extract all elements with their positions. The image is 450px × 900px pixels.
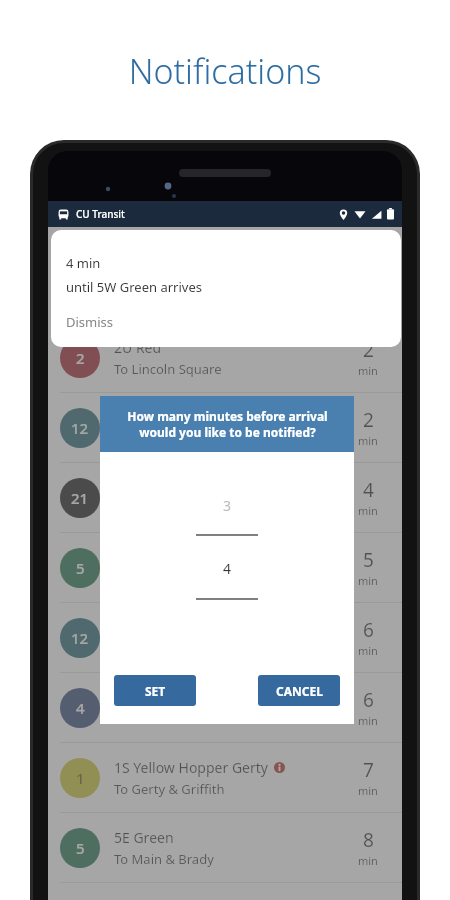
staticText: 7 [363,757,374,783]
button[interactable]: 5 [48,813,402,883]
staticText: 4 [363,477,374,503]
button[interactable]: 12 [48,603,402,673]
staticText: 4 [223,559,232,578]
staticText: CANCEL [276,683,323,699]
staticText: 5E Green [114,828,174,847]
staticText: 1S Yellow Hopper Gerty [114,758,268,777]
staticText: 12 [71,418,89,438]
button[interactable]: Dismiss [66,313,114,331]
staticText: min [358,573,378,588]
staticText: To Lincoln Square [114,360,222,378]
staticText: 12 [71,628,89,648]
button[interactable]: 4 min [51,230,401,347]
staticText: 5 [76,838,85,858]
staticText: 4 min [66,254,101,272]
staticText: 5 [76,558,85,578]
button[interactable]: 2 [48,323,402,393]
button[interactable]: 5 [48,533,402,603]
staticText: 4 [76,698,85,718]
staticText: To Gerty & Griffith [114,780,225,798]
button[interactable]: 21 [48,463,402,533]
staticText: 12W Teal [114,408,173,427]
staticText: 2 [363,337,374,363]
staticText: 2 [76,348,85,368]
staticText: 2U Red [114,338,162,357]
staticText: To Main & Brady [114,850,214,868]
staticText: To Market Place [114,430,211,448]
staticText: 1 [76,768,85,788]
staticText: min [358,713,378,728]
staticText: 8 [363,827,374,853]
staticText: 4E Blue [114,688,163,707]
staticText: How many minutes before arrival would yo… [127,408,328,440]
staticText: Notifications [0,48,450,94]
staticText: min [358,503,378,518]
staticText: CU Transit [76,207,125,221]
staticText: min [358,853,378,868]
staticText: 2 [363,407,374,433]
staticText: 6 [363,617,374,643]
staticText: 3 [223,496,232,515]
staticText: To Round Barn Road [114,710,239,728]
staticText: until 5W Green arrives [66,278,202,296]
staticText: min [358,363,378,378]
button[interactable]: 1 [48,743,402,813]
button[interactable]: SET [114,675,196,706]
staticText: SET [145,683,166,699]
staticText: min [358,643,378,658]
staticText: 5 [363,547,374,573]
staticText: min [358,783,378,798]
staticText: 6 [363,687,374,713]
button[interactable]: CANCEL [258,675,340,706]
button[interactable]: 4 [48,673,402,743]
staticText: 21 [71,488,89,508]
staticText: min [358,433,378,448]
button[interactable]: 12 [48,393,402,463]
